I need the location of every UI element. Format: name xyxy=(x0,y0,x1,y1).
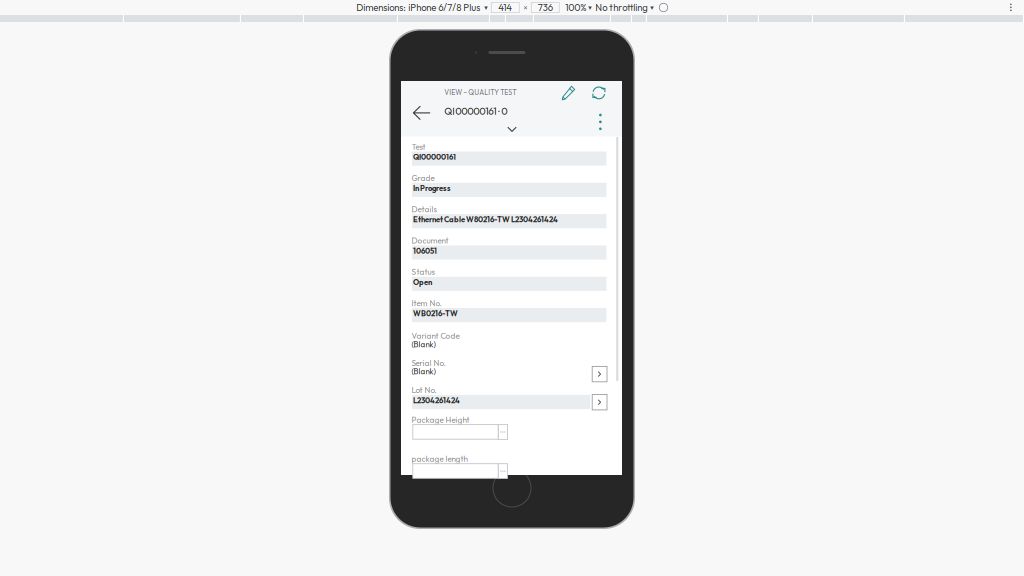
staticText: No throttling xyxy=(595,1,648,14)
staticText: Open xyxy=(413,277,432,287)
staticText: package length xyxy=(411,454,467,464)
staticText: Serial No. xyxy=(411,358,445,368)
button[interactable]: More options xyxy=(599,114,602,130)
staticText: ▾ xyxy=(480,3,491,12)
staticText: Variant Code xyxy=(411,331,459,341)
staticText: QI00000161 xyxy=(413,152,456,162)
button[interactable]: Select value xyxy=(592,366,607,382)
button[interactable]: Select value xyxy=(592,394,607,410)
staticText: 736 xyxy=(538,1,553,14)
button[interactable]: Edit xyxy=(561,86,575,101)
staticText: In Progress xyxy=(413,183,451,193)
staticText: Package Height xyxy=(411,415,469,425)
staticText: Ethernet Cable W80216-TW L2304261424 xyxy=(413,215,558,224)
button[interactable]: Back xyxy=(412,105,430,120)
staticText: Dimensions: iPhone 6/7/8 Plus xyxy=(356,1,480,14)
staticText: (Blank) xyxy=(411,366,435,376)
button[interactable]: More xyxy=(498,464,507,478)
staticText: Test xyxy=(411,141,425,152)
staticText: Document xyxy=(411,235,448,246)
staticText: Grade xyxy=(411,173,434,183)
staticText: ▾ xyxy=(648,3,659,12)
button[interactable]: More xyxy=(498,425,507,439)
staticText: QI00000161 · 0 xyxy=(444,105,507,117)
staticText: 106051 xyxy=(413,246,437,256)
staticText: × xyxy=(519,2,531,13)
staticText: ▾ xyxy=(586,3,595,12)
button[interactable]: Expand header xyxy=(507,127,517,132)
staticText: Details xyxy=(411,204,436,214)
staticText: L2304261424 xyxy=(413,395,460,405)
staticText: (Blank) xyxy=(411,339,435,349)
staticText: WB0216-TW xyxy=(413,309,458,318)
staticText: 100% xyxy=(559,1,586,14)
staticText: VIEW – QUALITY TEST xyxy=(444,88,516,97)
button[interactable]: Refresh xyxy=(592,86,607,101)
staticText: Item No. xyxy=(411,298,441,308)
staticText: Status xyxy=(411,267,434,277)
staticText: Lot No. xyxy=(411,385,436,395)
staticText: 414 xyxy=(498,1,512,14)
